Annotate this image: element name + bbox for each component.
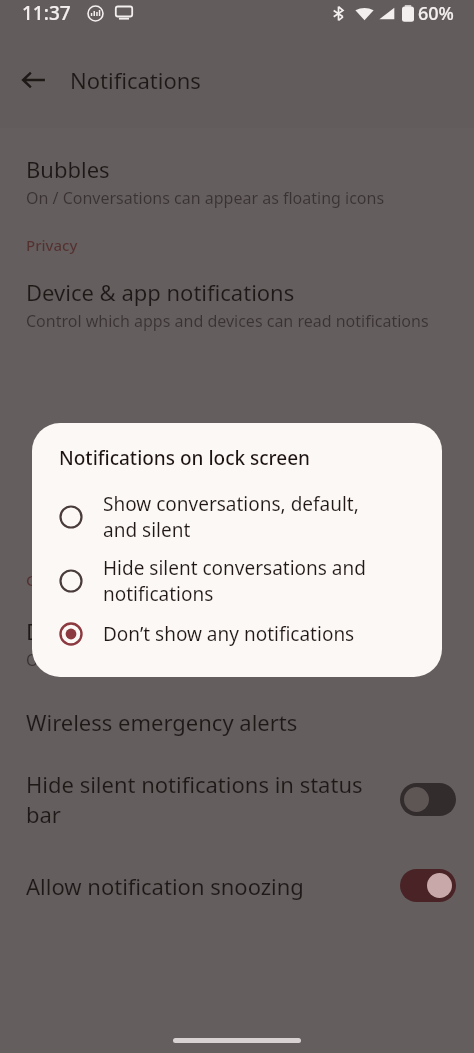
staticText: Control which apps and devices can read …: [26, 310, 429, 332]
staticText: Do Not Disturb: [26, 616, 182, 646]
button[interactable]: Don’t show any notifications: [32, 613, 442, 655]
button[interactable]: Off: [400, 783, 456, 816]
button[interactable]: Hide silent notifications in status bar: [0, 769, 474, 829]
button[interactable]: Show conversations, default, and silent: [32, 485, 442, 549]
staticText: Wireless emergency alerts: [26, 707, 298, 737]
staticText: On / Conversations can appear as floatin…: [26, 187, 385, 209]
staticText: Off / 1 schedule can turn on automatical…: [26, 649, 341, 671]
button[interactable]: Hide silent conversations and notificati…: [32, 549, 442, 613]
button[interactable]: Back: [10, 56, 58, 104]
staticText: Device & app notifications: [26, 277, 295, 307]
button[interactable]: Device & app notifications: [0, 277, 474, 332]
staticText: 11:37: [22, 0, 71, 26]
staticText: Show conversations, default, and silent: [103, 491, 359, 543]
staticText: Don’t show any notifications: [103, 621, 355, 647]
staticText: Bubbles: [26, 154, 110, 184]
staticText: General: [26, 570, 83, 590]
button[interactable]: Allow notification snoozing: [0, 869, 474, 902]
button[interactable]: On: [400, 869, 456, 902]
button[interactable]: Do Not Disturb: [0, 616, 474, 671]
staticText: 60%: [418, 1, 454, 26]
staticText: Hide silent notifications in status bar: [26, 769, 388, 829]
staticText: Privacy: [26, 235, 78, 255]
staticText: Notifications: [70, 65, 201, 95]
staticText: Hide silent conversations and notificati…: [103, 555, 366, 607]
button[interactable]: Bubbles: [0, 154, 474, 209]
button[interactable]: Wireless emergency alerts: [0, 707, 474, 737]
staticText: Notifications on lock screen: [59, 445, 310, 471]
staticText: Allow notification snoozing: [26, 871, 304, 901]
